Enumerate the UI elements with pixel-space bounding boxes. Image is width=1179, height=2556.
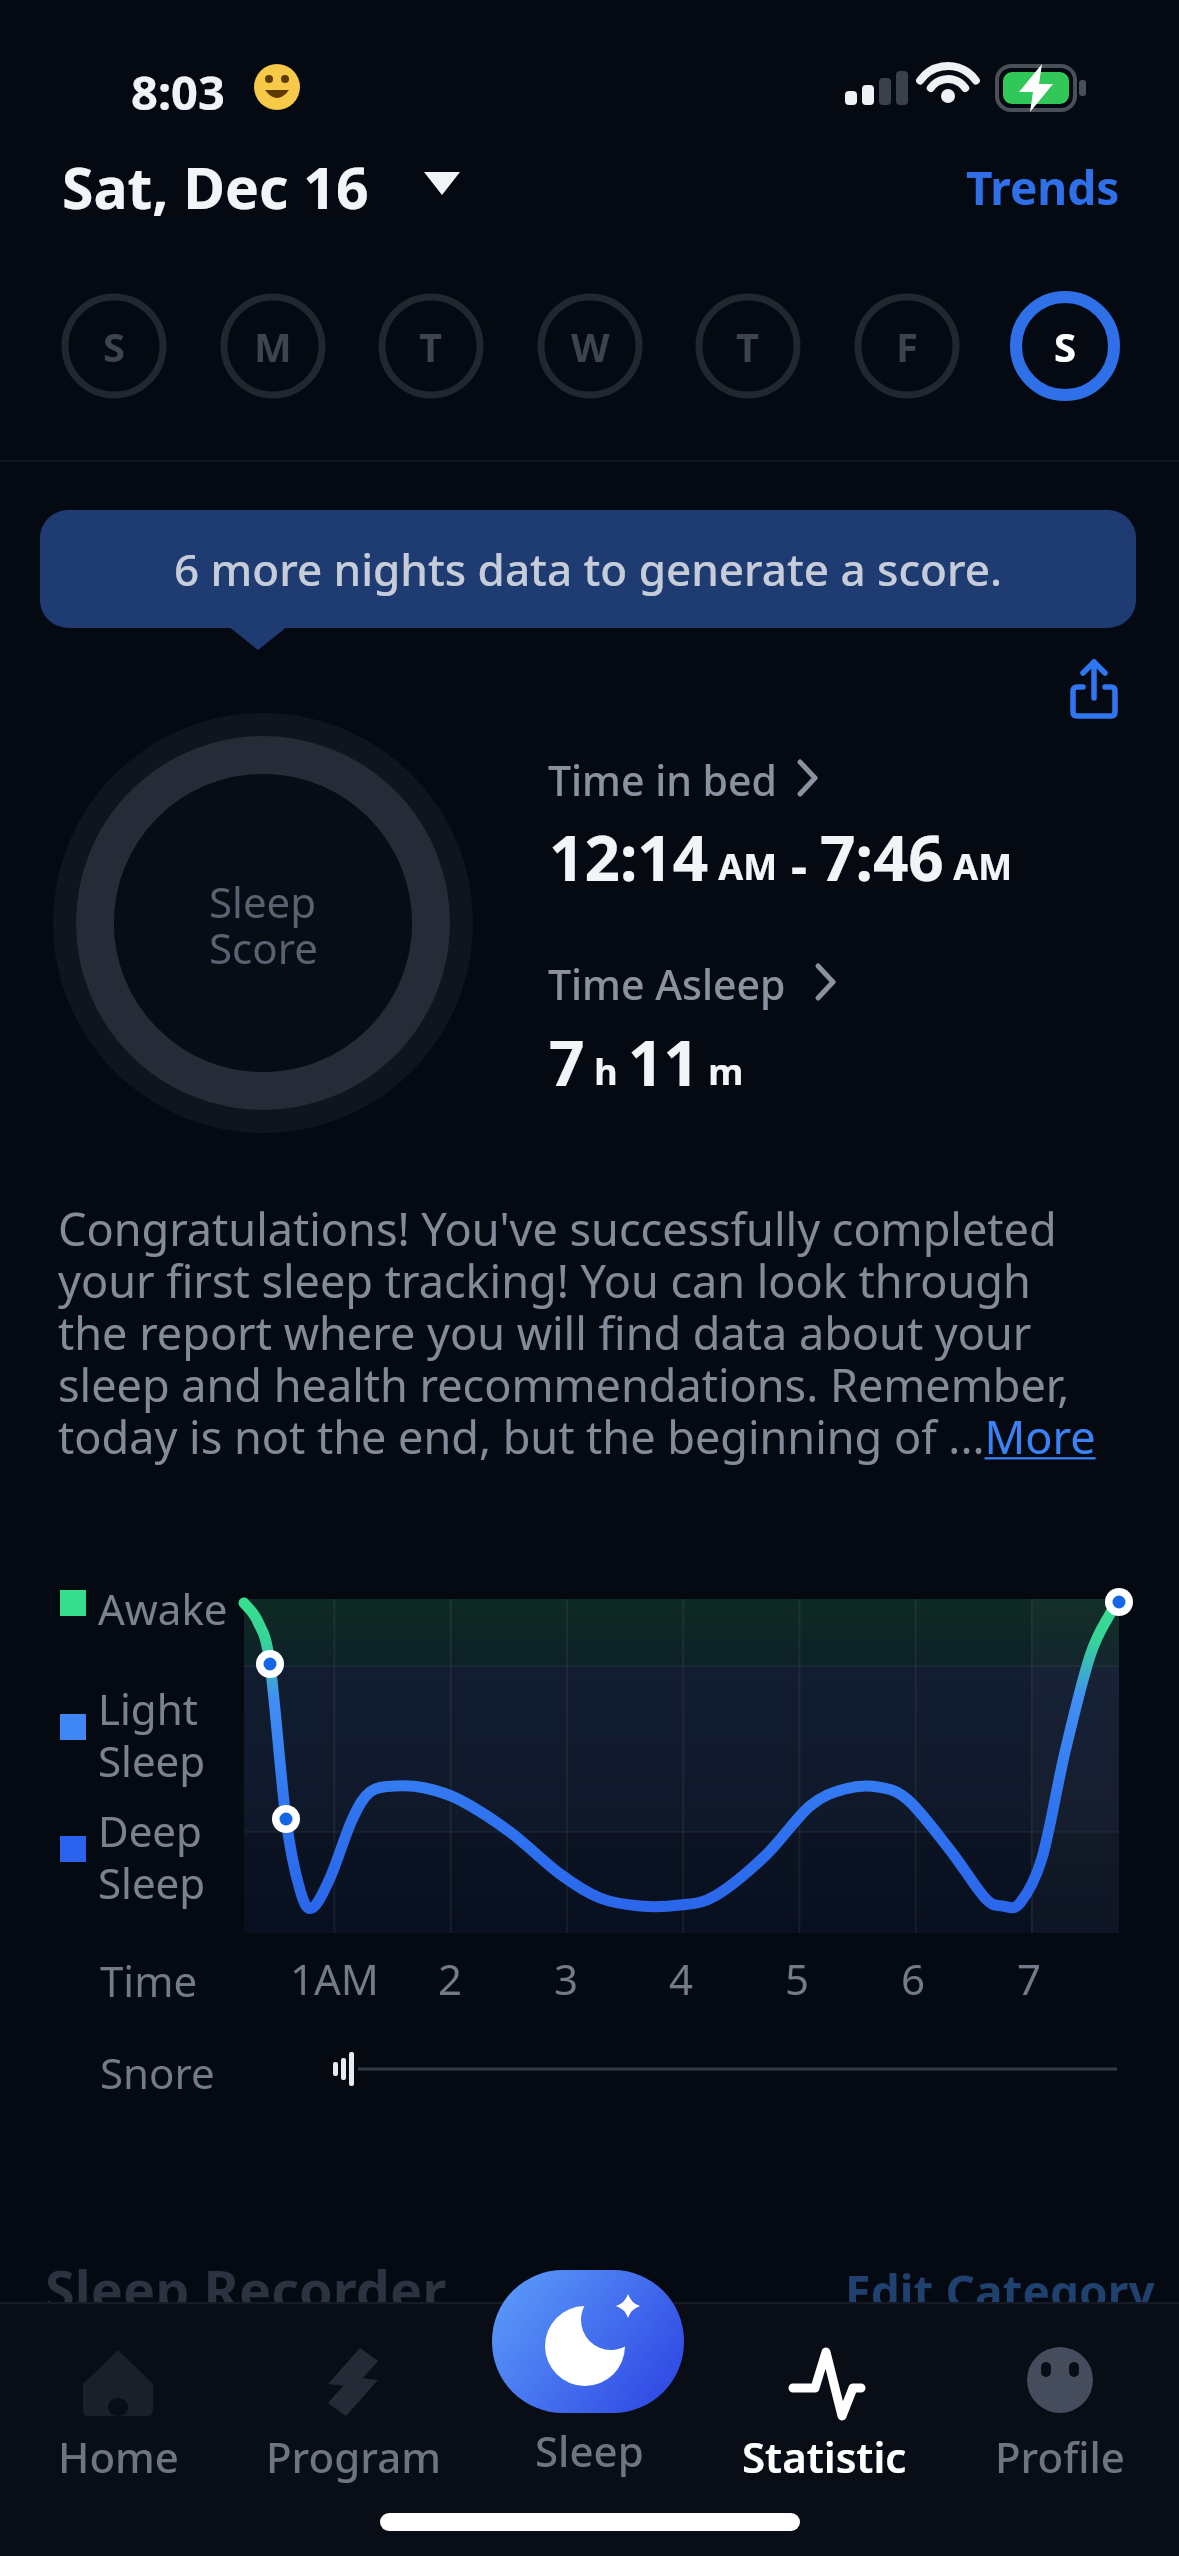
staticText: Sleep: [209, 873, 317, 930]
staticText: W: [571, 319, 610, 373]
staticText: S: [103, 319, 126, 373]
staticText: Time in bed: [548, 752, 777, 808]
staticText: 3: [554, 1950, 579, 2007]
staticText: 12:14: [549, 815, 709, 899]
staticText: Light: [98, 1680, 198, 1737]
staticText: T: [419, 319, 443, 373]
staticText: 11: [628, 1020, 699, 1104]
staticText: Edit Category: [845, 2260, 1155, 2323]
button[interactable]: [492, 2270, 684, 2413]
staticText: Snore: [100, 2044, 215, 2101]
button[interactable]: F: [854, 293, 960, 399]
staticText: 5: [785, 1950, 810, 2007]
button[interactable]: Profile: [965, 2320, 1155, 2500]
button[interactable]: 6 more nights data to generate a score.: [40, 510, 1136, 628]
staticText: h: [585, 1047, 628, 1096]
button[interactable]: M: [220, 293, 326, 399]
button[interactable]: T: [378, 293, 484, 399]
staticText: Congratulations! You've successfully com…: [58, 1198, 1096, 1467]
staticText: 2: [438, 1950, 463, 2007]
staticText: Trends: [966, 156, 1120, 219]
staticText: Profile: [995, 2428, 1125, 2485]
button[interactable]: Statistic: [729, 2320, 919, 2500]
staticText: -: [778, 831, 820, 899]
staticText: m: [699, 1047, 744, 1096]
staticText: 7:46: [820, 815, 944, 899]
button[interactable]: Program: [258, 2320, 448, 2500]
staticText: Sleep: [535, 2422, 644, 2479]
staticText: 4: [669, 1950, 694, 2007]
staticText: Score: [209, 919, 318, 976]
staticText: F: [896, 319, 918, 373]
staticText: Deep: [98, 1802, 202, 1859]
button[interactable]: Edit Category: [845, 2260, 1155, 2323]
staticText: Program: [266, 2428, 441, 2485]
button[interactable]: T: [695, 293, 801, 399]
staticText: Statistic: [742, 2428, 907, 2485]
button[interactable]: S: [1012, 293, 1118, 399]
button[interactable]: Home: [23, 2320, 213, 2500]
button[interactable]: Trends: [966, 156, 1120, 219]
staticText: Awake: [98, 1580, 228, 1637]
staticText: S: [1054, 319, 1077, 373]
staticText: 1AM: [290, 1950, 379, 2007]
staticText: 6 more nights data to generate a score.: [174, 539, 1002, 599]
staticText: 7: [1017, 1950, 1042, 2007]
staticText: AM: [709, 842, 778, 891]
staticText: Sleep: [98, 1732, 206, 1789]
button[interactable]: Time in bed: [548, 752, 777, 808]
staticText: 6: [901, 1950, 926, 2007]
staticText: Home: [58, 2428, 179, 2485]
staticText: Time Asleep: [548, 956, 786, 1012]
staticText: 8:03: [131, 60, 225, 124]
staticText: Sleep Recorder: [45, 2252, 447, 2326]
staticText: Time: [100, 1952, 198, 2009]
button[interactable]: S: [61, 293, 167, 399]
staticText: Sat, Dec 16: [62, 148, 369, 226]
button[interactable]: Sat, Dec 16: [62, 148, 369, 226]
staticText: Sleep: [98, 1854, 206, 1911]
button[interactable]: W: [537, 293, 643, 399]
staticText: T: [736, 319, 760, 373]
button[interactable]: Time Asleep: [548, 956, 786, 1012]
staticText: M: [254, 319, 292, 373]
staticText: 7: [549, 1020, 585, 1104]
staticText: AM: [944, 842, 1013, 891]
